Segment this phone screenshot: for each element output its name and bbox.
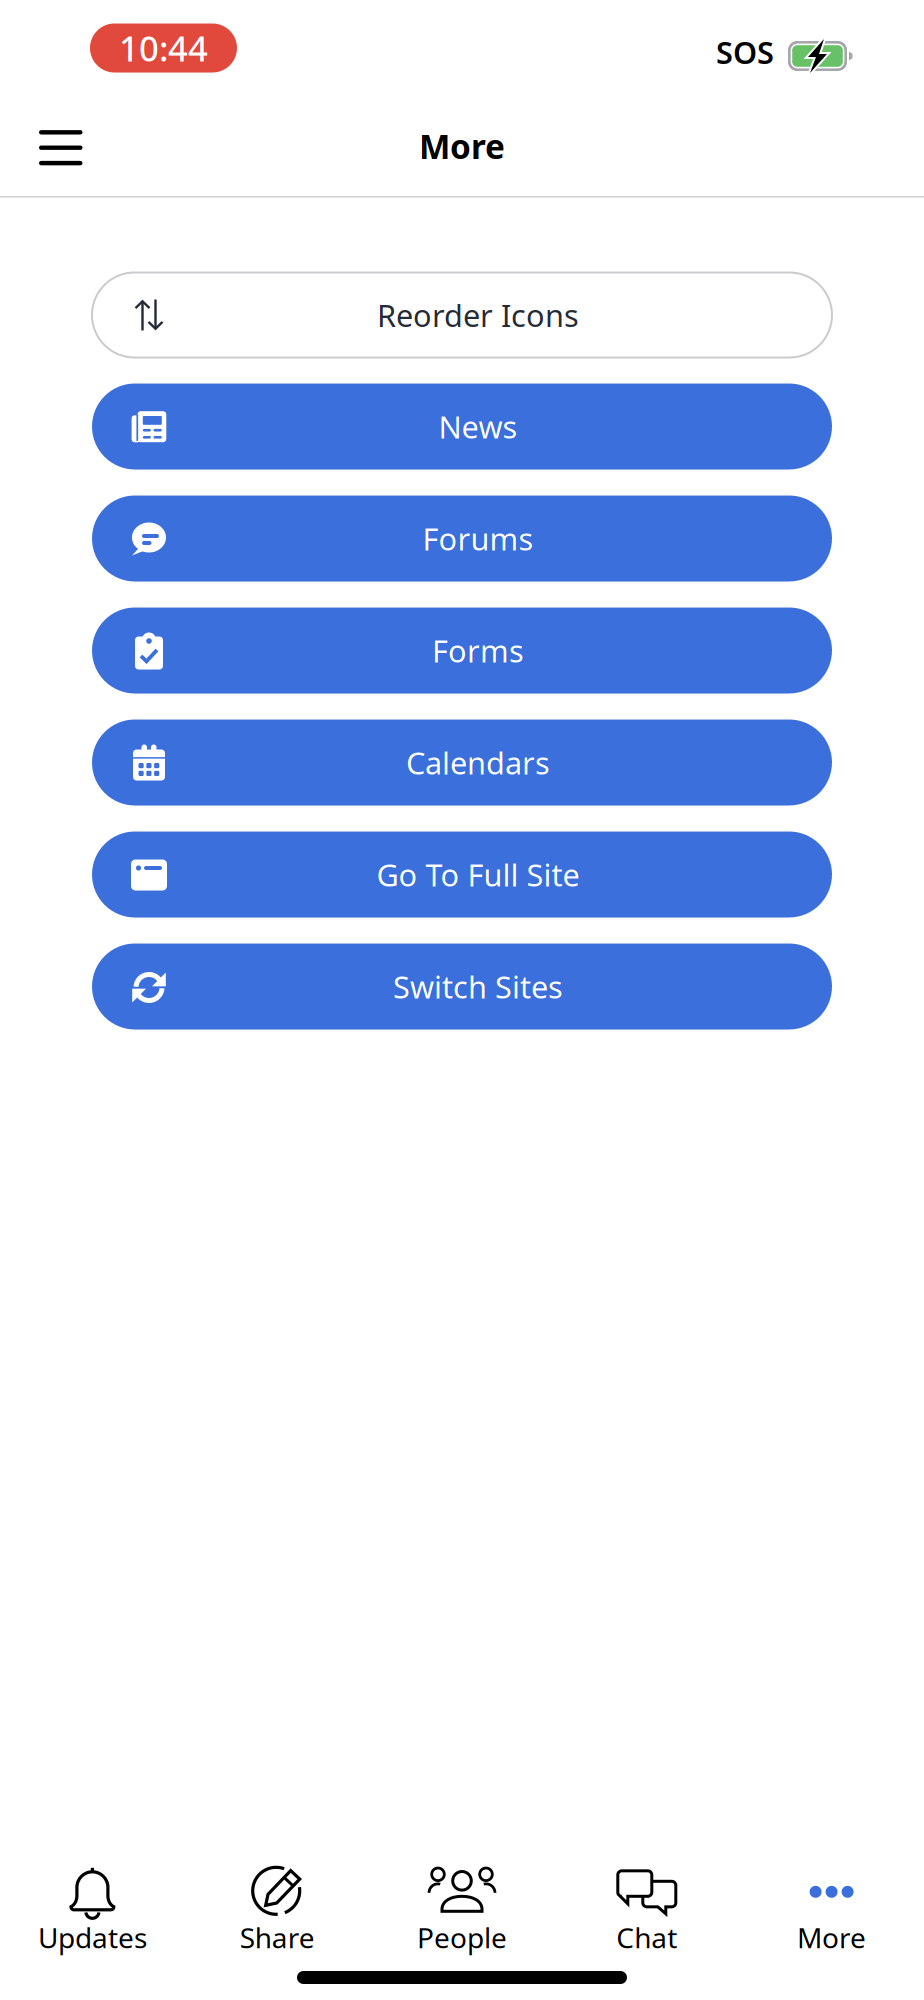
staticText: People	[417, 1919, 507, 1956]
button[interactable]: Chat	[554, 1856, 739, 1956]
staticText: Switch Sites	[393, 966, 563, 1007]
staticText: Reorder Icons	[377, 295, 579, 335]
staticText: News	[438, 406, 517, 447]
staticText: Chat	[616, 1919, 677, 1956]
staticText: Go To Full Site	[376, 854, 579, 895]
staticText: Share	[240, 1919, 315, 1956]
button[interactable]: Go To Full Site	[92, 831, 832, 917]
staticText: Updates	[38, 1919, 147, 1956]
button[interactable]: Switch Sites	[92, 943, 832, 1029]
button[interactable]: Calendars	[92, 719, 832, 805]
button[interactable]: News	[92, 383, 832, 469]
button[interactable]: More	[739, 1856, 924, 1956]
button[interactable]: Reorder Icons	[92, 272, 832, 357]
staticText: Forms	[432, 630, 524, 671]
button[interactable]: Forums	[92, 495, 832, 581]
staticText: Calendars	[406, 742, 550, 783]
staticText: More	[797, 1919, 866, 1956]
button[interactable]: People	[370, 1856, 554, 1956]
button[interactable]: Menu	[24, 112, 97, 180]
staticText: SOS	[716, 32, 774, 72]
staticText: More	[419, 124, 505, 168]
button[interactable]: Forms	[92, 607, 832, 693]
staticText: Forums	[422, 518, 533, 559]
button[interactable]: Updates	[0, 1856, 185, 1956]
button[interactable]: Share	[185, 1856, 370, 1956]
staticText: 10:44	[119, 25, 208, 71]
